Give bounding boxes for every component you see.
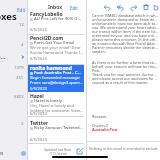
button[interactable]: Delete [141, 2, 151, 12]
button[interactable]: Edit [69, 4, 79, 12]
button[interactable]: Archive [0, 119, 27, 128]
staticText: Ronita Hammond Thanks f... [30, 50, 84, 55]
staticText: please write this program. In the other … [92, 37, 159, 41]
staticText: 251 [16, 75, 24, 81]
staticText: ronita hammond [30, 65, 73, 72]
button[interactable]: Edit [16, 6, 27, 14]
staticText: looking for someone. View... [30, 108, 84, 113]
button[interactable]: Move to folder [154, 2, 158, 12]
button[interactable]: Messages [0, 149, 27, 158]
button[interactable]: Reply all [115, 2, 125, 12]
staticText: 4 [21, 42, 24, 48]
button[interactable]: Drafts [0, 73, 27, 82]
staticText: Hazel is lonely [34, 98, 86, 104]
staticText: 6/5/2023 [30, 137, 47, 142]
staticText: Inbox [48, 4, 62, 11]
staticText: Updated Just Now [44, 148, 71, 152]
staticText: Mailboxes [0, 10, 19, 23]
staticText: 117 Unread [49, 152, 67, 156]
button[interactable]: FancyLobello [28, 11, 84, 34]
button[interactable]: Reply [102, 2, 112, 12]
staticText: our transit within item, if the item has… [92, 29, 159, 33]
staticText: We've got your email! Dear [30, 45, 84, 50]
staticText: you. We understand your heart advised th… [92, 25, 159, 29]
staticText: Thank you for your patience during our t… [92, 72, 159, 76]
staticText: 6/5/2023 [30, 27, 47, 32]
button[interactable]: Pencil2D.com [28, 35, 84, 64]
staticText: presented by you, and you have not alrea… [92, 33, 159, 37]
staticText: Carrier (SMBC) database which in where [92, 13, 159, 17]
staticText: 1379 [14, 65, 24, 71]
staticText: Charles Z [92, 123, 159, 127]
button[interactable]: Collapse [21, 55, 25, 59]
staticText: 2 [21, 121, 24, 127]
staticText: sanden. [92, 49, 159, 53]
button[interactable]: Flagged [0, 40, 27, 49]
staticText: Regards, [92, 114, 159, 118]
staticText: 6/5/2023 [30, 111, 47, 116]
staticText: Fwd: Australia Post - C... [34, 70, 86, 76]
staticText: ronita hammond- [0, 53, 7, 60]
staticText: Messages [0, 150, 11, 157]
staticText: Pat'n-Get Your Email [34, 40, 86, 46]
staticText: Ricky Zarouon Tweeted... [34, 125, 86, 131]
staticText: Begin forwarded message: [30, 75, 84, 80]
staticText: From: sara@design3.spam... [30, 80, 84, 85]
staticText: Edit [17, 7, 26, 13]
staticText: unfortunately, have not been able to loc… [92, 21, 159, 25]
button[interactable]: Twitter [28, 120, 84, 143]
staticText: an enquiry through Best Postal Address [92, 41, 159, 45]
staticText: caused as a result of this matter. [92, 80, 159, 84]
staticText: Pencil2D.com [30, 35, 64, 42]
button[interactable]: Inbox [0, 20, 27, 29]
button[interactable]: Junk [0, 92, 27, 101]
staticText: Post. [92, 68, 159, 72]
staticText: unfortunately, damaged or know items are… [92, 17, 159, 21]
staticText: 6/5/2023 [30, 56, 47, 61]
staticText: Partner enquiries decide the detected to… [92, 45, 159, 49]
button[interactable]: ronita hammond [28, 65, 84, 92]
staticText: FancyLobello [30, 11, 63, 18]
staticText: Nothing in this email is intended to exc… [89, 146, 158, 151]
staticText: Hey, Hazel is lonely and [30, 103, 84, 108]
staticText: Twitter [30, 120, 49, 127]
staticText: 6/5/2023 [30, 86, 47, 91]
staticText: ronita@outlook.com.au [0, 58, 5, 64]
staticText: AU Pics Left for 30% O... [34, 16, 86, 22]
staticText: 6823 [14, 94, 24, 100]
button[interactable]: Forward [128, 2, 138, 12]
staticText: As there is no further a form that can b… [92, 60, 159, 64]
staticText: Australia Post [92, 127, 118, 131]
staticText: Edit [70, 5, 78, 11]
button[interactable]: Hazel [28, 93, 84, 116]
staticText: 12 [19, 22, 24, 28]
staticText: behalf, your enquiry will now be closed … [92, 64, 159, 68]
staticText: Hazel [30, 93, 44, 100]
staticText: and please accept our apologies for any … [92, 76, 159, 80]
button[interactable]: Compose [76, 148, 83, 155]
button[interactable]: Inbox [0, 63, 27, 72]
